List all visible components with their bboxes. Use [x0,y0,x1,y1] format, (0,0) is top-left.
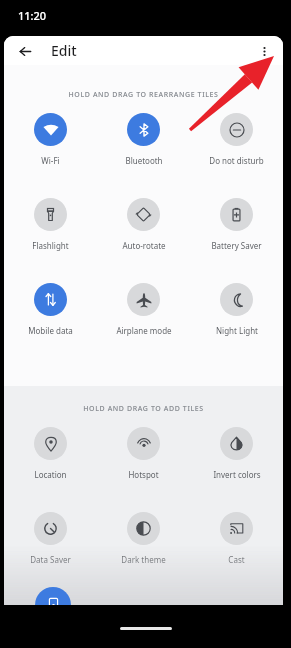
button[interactable]: Auto-rotate [97,198,190,251]
button[interactable]: Hotspot [97,427,190,480]
button[interactable]: Back [12,38,38,64]
staticText: Airplane mode [116,325,172,336]
button[interactable]: More options [251,38,277,64]
button[interactable]: Night Light [190,283,283,336]
button[interactable]: Wi-Fi [4,113,97,166]
staticText: Cast [228,554,245,565]
staticText: Flashlight [32,240,69,251]
staticText: Dark theme [121,554,166,565]
staticText: Edit [51,41,77,60]
button[interactable]: Do not disturb [190,113,283,166]
button[interactable]: Airplane mode [97,283,190,336]
staticText: Hotspot [128,469,159,480]
button[interactable]: Dark theme [97,512,190,565]
button[interactable]: Flashlight [4,198,97,251]
button[interactable]: Data Saver [4,512,97,565]
staticText: Do not disturb [209,155,264,166]
staticText: HOLD AND DRAG TO ADD TILES [83,404,204,414]
staticText: Wi-Fi [41,155,60,166]
button[interactable]: Mobile data [4,283,97,336]
staticText: 11:20 [18,8,47,23]
button[interactable]: Cast [190,512,283,565]
button[interactable]: Bluetooth [97,113,190,166]
staticText: Data Saver [30,554,71,565]
button[interactable]: Location [4,427,97,480]
staticText: Mobile data [28,325,73,336]
button[interactable]: Battery Saver [190,198,283,251]
staticText: Invert colors [213,469,261,480]
button[interactable]: Invert colors [190,427,283,480]
staticText: Night Light [216,325,258,336]
staticText: HOLD AND DRAG TO REARRANGE TILES [68,90,219,100]
staticText: Bluetooth [125,155,163,166]
staticText: Location [34,469,67,480]
button[interactable]: Screen record tile [35,587,71,605]
staticText: Battery Saver [211,240,262,251]
staticText: Auto-rotate [122,240,166,251]
